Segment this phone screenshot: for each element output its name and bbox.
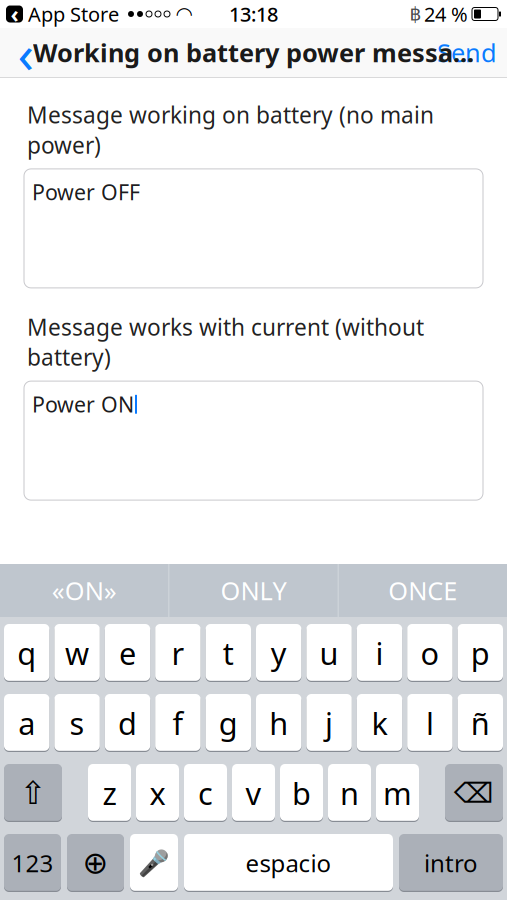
button[interactable]: f	[155, 694, 201, 752]
staticText: 123	[11, 847, 53, 879]
staticText: t	[223, 633, 234, 673]
button[interactable]: h	[256, 694, 301, 752]
button[interactable]: a	[4, 694, 49, 752]
button[interactable]: Power ON	[24, 381, 483, 500]
staticText: b	[292, 773, 311, 813]
staticText: h	[269, 703, 288, 743]
button[interactable]: Power OFF	[24, 169, 483, 288]
button[interactable]: s	[54, 694, 100, 752]
button[interactable]: z	[88, 764, 131, 822]
staticText: g	[219, 703, 238, 743]
staticText: r	[171, 633, 184, 673]
button[interactable]: espacio	[184, 834, 393, 892]
button[interactable]: e	[105, 624, 150, 682]
button[interactable]: q	[4, 624, 49, 682]
staticText: ONCE	[388, 574, 457, 607]
button[interactable]: g	[206, 694, 251, 752]
staticText: s	[70, 703, 85, 743]
staticText: ‹	[17, 17, 34, 88]
staticText: ◠	[175, 3, 192, 25]
button[interactable]: ONCE	[339, 564, 507, 617]
button[interactable]: i	[357, 624, 402, 682]
staticText: Working on battery power messa...	[33, 36, 474, 69]
button[interactable]: o	[407, 624, 453, 682]
staticText: espacio	[245, 847, 331, 879]
button[interactable]: Delete	[445, 764, 503, 822]
button[interactable]: l	[407, 694, 453, 752]
staticText: 13:18	[229, 1, 278, 27]
staticText: y	[271, 633, 287, 673]
button[interactable]: r	[155, 624, 201, 682]
button[interactable]: b	[280, 764, 323, 822]
staticText: n	[340, 773, 359, 813]
button[interactable]: y	[256, 624, 301, 682]
button[interactable]: Send	[431, 30, 503, 74]
button[interactable]: u	[306, 624, 352, 682]
button[interactable]: ONLY	[169, 564, 338, 617]
staticText: ⊕	[82, 846, 108, 880]
staticText: i	[375, 633, 383, 673]
staticText: p	[471, 633, 490, 673]
staticText: m	[383, 773, 412, 813]
button[interactable]: m	[376, 764, 419, 822]
button[interactable]: ñ	[458, 694, 503, 752]
staticText: j	[325, 703, 333, 743]
staticText: u	[320, 633, 339, 673]
staticText: k	[371, 703, 387, 743]
button[interactable]: k	[357, 694, 402, 752]
button[interactable]: p	[458, 624, 503, 682]
staticText: Power OFF	[32, 178, 140, 206]
button[interactable]: d	[105, 694, 150, 752]
staticText: Power ON	[32, 390, 134, 418]
button[interactable]: 123	[4, 834, 61, 892]
button[interactable]: Shift	[4, 764, 62, 822]
staticText: f	[172, 703, 183, 743]
staticText: e	[119, 633, 136, 673]
staticText: ONLY	[220, 574, 286, 607]
button[interactable]: Next keyboard	[67, 834, 124, 892]
button[interactable]: c	[184, 764, 227, 822]
button[interactable]: j	[306, 694, 352, 752]
staticText: l	[426, 703, 434, 743]
button[interactable]: Back	[4, 30, 48, 74]
staticText: Send	[437, 36, 497, 69]
staticText: a	[18, 703, 35, 743]
staticText: «ON»	[52, 574, 117, 607]
staticText: App Store	[28, 1, 119, 27]
staticText: Message working on battery (no main powe…	[27, 100, 434, 160]
button[interactable]: x	[136, 764, 179, 822]
staticText: d	[118, 703, 137, 743]
staticText: 🎤	[138, 848, 170, 877]
staticText: x	[149, 773, 165, 813]
staticText: ฿	[409, 3, 421, 25]
staticText: q	[17, 633, 36, 673]
staticText: o	[420, 633, 439, 673]
button[interactable]: v	[232, 764, 275, 822]
staticText: Message works with current (without batt…	[27, 312, 424, 372]
button[interactable]: n	[328, 764, 371, 822]
button[interactable]: t	[206, 624, 251, 682]
button[interactable]: Dictate	[130, 834, 178, 892]
button[interactable]: «ON»	[0, 564, 168, 617]
staticText: 24 %	[424, 1, 468, 27]
staticText: ⌫	[454, 777, 494, 809]
button[interactable]: w	[54, 624, 100, 682]
staticText: w	[65, 633, 89, 673]
staticText: ‹	[10, 0, 18, 29]
staticText: intro	[424, 847, 478, 879]
staticText: ⇧	[19, 775, 46, 811]
staticText: c	[198, 773, 213, 813]
button[interactable]: intro	[399, 834, 503, 892]
staticText: ñ	[471, 703, 490, 743]
staticText: z	[102, 773, 116, 813]
staticText: v	[245, 773, 261, 813]
